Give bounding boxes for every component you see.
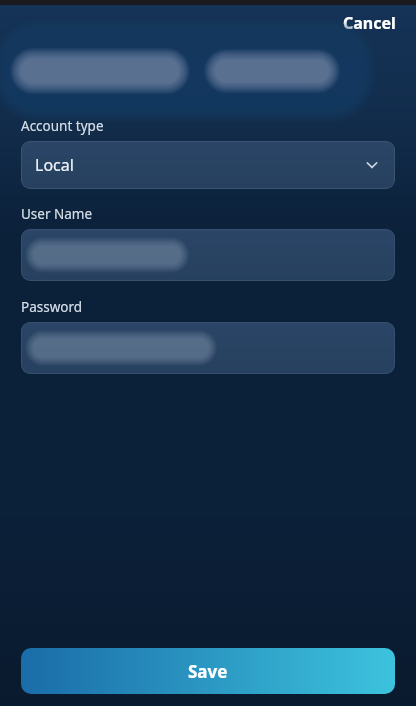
button[interactable] xyxy=(21,322,395,374)
staticText: Password xyxy=(21,298,83,316)
staticText: Save xyxy=(188,660,228,683)
other: Expand account type xyxy=(363,156,381,174)
button[interactable]: Local xyxy=(21,141,395,189)
button[interactable]: Save xyxy=(21,648,395,694)
button[interactable] xyxy=(21,229,395,281)
staticText: Cancel xyxy=(343,12,396,34)
staticText: Local xyxy=(35,154,74,176)
button[interactable]: Cancel xyxy=(337,8,402,38)
staticText: Account type xyxy=(21,117,104,135)
staticText: User Name xyxy=(21,205,93,223)
